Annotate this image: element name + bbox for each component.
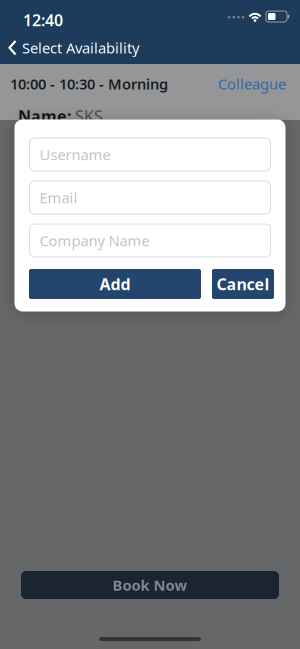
staticText: Username <box>39 145 110 164</box>
staticText: Cancel <box>216 273 269 295</box>
staticText: Colleague <box>218 74 286 93</box>
staticText: SKS <box>75 105 103 127</box>
button[interactable]: Book Now <box>21 571 279 599</box>
staticText: Name: <box>18 105 71 127</box>
staticText: 12:40 <box>23 9 63 31</box>
button[interactable]: Add <box>29 269 201 299</box>
button[interactable]: Colleague <box>218 74 286 93</box>
staticText: 10:00 - 10:30 - Morning <box>10 74 168 93</box>
staticText: Select Availability <box>22 38 139 57</box>
staticText: Email <box>39 188 77 207</box>
button[interactable]: Cancel <box>212 269 274 299</box>
button[interactable]: Back <box>8 38 139 57</box>
staticText: Company Name <box>39 231 149 250</box>
staticText: Add <box>99 273 130 295</box>
staticText: Book Now <box>112 575 187 595</box>
